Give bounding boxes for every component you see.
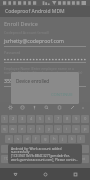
button[interactable]: v [42, 145, 50, 153]
button[interactable]: q [1, 125, 8, 133]
staticText: j [62, 136, 64, 142]
button[interactable]: u [54, 125, 62, 133]
staticText: i [66, 126, 68, 132]
button[interactable]: Comma [15, 155, 24, 163]
button[interactable]: Back [0, 168, 30, 180]
button[interactable]: 9 [72, 115, 80, 123]
button[interactable]: 4 [27, 115, 35, 123]
button[interactable]: o [72, 125, 80, 133]
staticText: z [18, 146, 20, 152]
button[interactable]: k [68, 135, 76, 143]
staticText: k [71, 136, 74, 142]
button[interactable]: Home [30, 168, 60, 180]
button[interactable]: j [59, 135, 67, 143]
staticText: 5 [39, 116, 42, 122]
staticText: 3 [21, 116, 24, 122]
button[interactable]: Shift [1, 145, 13, 153]
button[interactable]: s [14, 135, 22, 143]
staticText: l [80, 136, 82, 142]
staticText: q [3, 126, 6, 132]
button[interactable]: 7 [54, 115, 62, 123]
button[interactable]: n [60, 145, 68, 153]
button[interactable]: 1 [1, 115, 8, 123]
staticText: r [30, 126, 32, 132]
button[interactable]: Recents [60, 168, 90, 180]
button[interactable]: Settings [4, 102, 16, 113]
staticText: jsrhetty@codeproof.com [4, 37, 64, 44]
button[interactable]: CONTINUE [48, 90, 76, 100]
button[interactable]: c [33, 145, 41, 153]
staticText: 9 [75, 116, 78, 122]
button[interactable] [4, 57, 86, 63]
button[interactable]: Handwriting [66, 102, 79, 113]
button[interactable]: f [32, 135, 40, 143]
button[interactable]: x [24, 145, 32, 153]
staticText: g [44, 136, 47, 142]
button[interactable]: jsrhetty@codeproof.com [4, 37, 86, 47]
button[interactable]: y [45, 125, 53, 133]
staticText: 0 [84, 116, 87, 122]
button[interactable]: 355382908013 [4, 77, 86, 87]
button[interactable]: 2 [9, 115, 17, 123]
button[interactable]: w [9, 125, 17, 133]
staticText: Device enrolled successfully [16, 78, 74, 84]
button[interactable]: z [14, 145, 23, 153]
button[interactable]: 3 [18, 115, 26, 123]
button[interactable]: Voice input [28, 102, 40, 113]
button[interactable]: h [50, 135, 58, 143]
staticText: CONTINUE [51, 92, 73, 98]
button[interactable]: Symbols [1, 155, 14, 163]
staticText: Codeproof Account (email) [4, 30, 49, 35]
staticText: Enroll Device [4, 20, 38, 27]
staticText: y [48, 126, 51, 132]
button[interactable]: Codeproof Android MDM [0, 6, 90, 17]
button[interactable]: Backspace [78, 145, 89, 153]
button[interactable]: 5 [36, 115, 44, 123]
staticText: Codeproof Android MDM [5, 8, 65, 15]
button[interactable]: b [51, 145, 59, 153]
staticText: Employee Name (Enter employee name or a … [4, 66, 86, 75]
staticText: 7 [57, 116, 60, 122]
staticText: e [21, 126, 24, 132]
button[interactable]: d [23, 135, 31, 143]
button[interactable]: 0 [81, 115, 89, 123]
staticText: c [36, 146, 39, 152]
button[interactable]: Clipboard [53, 102, 66, 113]
button[interactable]: g [41, 135, 49, 143]
staticText: 6 [48, 116, 51, 122]
button[interactable]: Period [64, 155, 73, 163]
button[interactable]: More [79, 102, 86, 113]
button[interactable]: p [81, 125, 89, 133]
staticText: b [54, 146, 57, 152]
staticText: Next [78, 157, 85, 161]
staticText: 4 [30, 116, 33, 122]
staticText: a [8, 136, 11, 142]
staticText: x [27, 146, 30, 152]
button[interactable]: 6 [45, 115, 53, 123]
staticText: Android for Work account added successfu… [11, 146, 79, 162]
button[interactable]: Stickers [16, 102, 28, 113]
button[interactable]: l [77, 135, 85, 143]
button[interactable]: r [27, 125, 35, 133]
button[interactable]: 8 [63, 115, 71, 123]
staticText: 8 [66, 116, 69, 122]
staticText: v [45, 146, 48, 152]
staticText: d [26, 136, 29, 142]
button[interactable]: Search [40, 102, 53, 113]
button[interactable]: Next [74, 155, 89, 163]
button[interactable]: e [18, 125, 26, 133]
staticText: f [35, 136, 37, 142]
button[interactable]: Space [25, 155, 63, 163]
staticText: 1 [3, 116, 6, 122]
button[interactable]: t [36, 125, 44, 133]
staticText: 2 [12, 116, 15, 122]
staticText: t [39, 126, 41, 132]
button[interactable]: a [5, 135, 13, 143]
staticText: o [75, 126, 78, 132]
staticText: w [11, 126, 15, 132]
staticText: u [57, 126, 60, 132]
